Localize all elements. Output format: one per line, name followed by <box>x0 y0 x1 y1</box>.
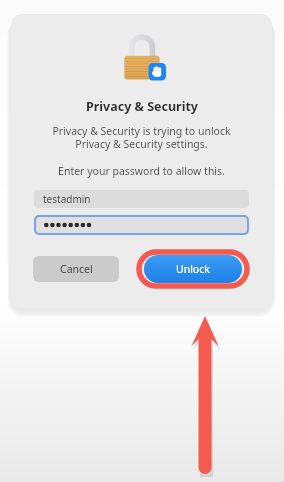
button[interactable]: Unlock <box>136 249 250 289</box>
staticText: Privacy & Security <box>86 98 198 115</box>
button[interactable]: Cancel <box>33 256 119 282</box>
other: Arrow pointing at Unlock button <box>178 316 232 474</box>
staticText: Privacy & Security is trying to unlock P… <box>52 124 231 151</box>
staticText: testadmin <box>43 192 91 206</box>
staticText: Cancel <box>60 262 93 276</box>
button[interactable] <box>36 217 247 233</box>
button[interactable]: testadmin <box>34 190 249 208</box>
staticText: Enter your password to allow this. <box>58 164 225 178</box>
staticText: Unlock <box>176 262 210 276</box>
